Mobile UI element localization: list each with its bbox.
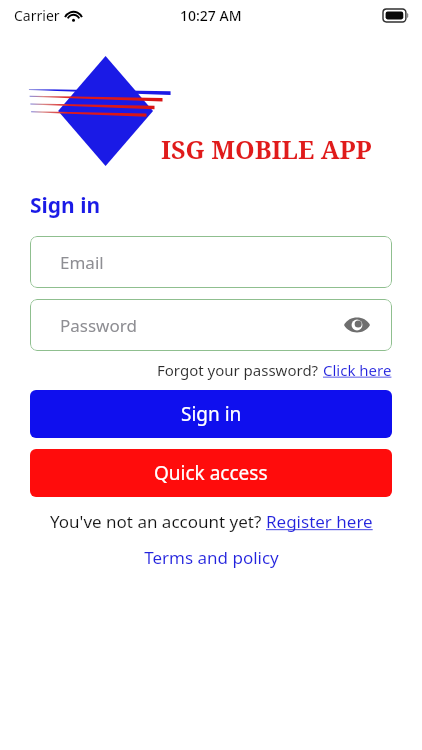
staticText: You've not an account yet? [50, 510, 266, 533]
button[interactable]: Sign in [30, 390, 392, 438]
staticText: Sign in [30, 191, 101, 220]
staticText: Forgot your password? [157, 360, 323, 380]
button[interactable]: Show password [342, 310, 372, 340]
staticText: Register here [266, 510, 373, 533]
staticText: 10:27 AM [180, 6, 242, 25]
staticText: Terms and policy [144, 546, 279, 569]
staticText: Click here [323, 360, 392, 380]
staticText: Email [60, 251, 104, 274]
staticText: Password [60, 314, 137, 337]
staticText: Carrier [14, 6, 60, 25]
button[interactable]: Password [30, 299, 392, 351]
button[interactable]: Email [30, 236, 392, 288]
button[interactable]: Click here [323, 360, 392, 380]
button[interactable]: Quick access [30, 449, 392, 497]
staticText: ISG MOBILE APP [161, 132, 372, 166]
button[interactable]: Terms and policy [144, 546, 279, 569]
button[interactable]: Register here [266, 510, 373, 533]
staticText: Sign in [181, 401, 242, 427]
staticText: Quick access [154, 460, 268, 486]
